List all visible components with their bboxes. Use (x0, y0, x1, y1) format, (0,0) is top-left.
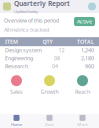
staticText: Docs (45, 122, 54, 127)
staticText: Research (5, 63, 28, 70)
staticText: 2,180 (81, 55, 94, 62)
staticText: 08 (54, 55, 60, 62)
button[interactable]: Growth (33, 73, 66, 97)
staticText: Sales (10, 88, 23, 95)
staticText: 12 (58, 47, 64, 54)
button[interactable]: Home (0, 115, 33, 127)
staticText: ITEM (5, 38, 18, 45)
staticText: Home (11, 122, 22, 127)
staticText: Overview of this period (4, 17, 59, 24)
staticText: TOTAL (77, 38, 94, 45)
staticText: 1,240 (81, 47, 94, 54)
staticText: All metrics tracked (4, 26, 49, 33)
button[interactable]: More (66, 115, 99, 127)
staticText: Growth (40, 88, 58, 95)
staticText: 04 (52, 63, 58, 70)
staticText: Updated today (14, 9, 38, 14)
button[interactable]: Docs (33, 115, 66, 127)
staticText: QTY (42, 38, 52, 45)
staticText: Active (77, 18, 92, 25)
staticText: Engineering (5, 55, 33, 62)
staticText: Reach (75, 88, 90, 95)
button[interactable]: Reach (66, 73, 99, 97)
staticText: More (77, 122, 87, 127)
button[interactable]: Sales (0, 73, 33, 97)
staticText: 960 (82, 63, 94, 70)
staticText: Design system (5, 47, 42, 54)
staticText: Quarterly Report (14, 0, 70, 8)
